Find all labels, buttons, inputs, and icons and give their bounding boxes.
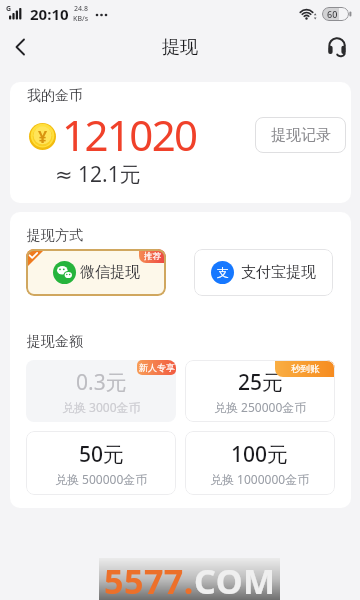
button[interactable]: [0, 28, 40, 66]
button[interactable]: 0.3元: [26, 360, 176, 422]
staticText: ≈ 12.1元: [55, 160, 141, 189]
button[interactable]: 25元: [185, 360, 335, 422]
button[interactable]: 提现记录: [255, 117, 346, 153]
staticText: 提现记录: [271, 126, 331, 145]
staticText: 24.8: [74, 4, 88, 14]
button[interactable]: 微信提现: [26, 249, 166, 296]
staticText: 推荐: [144, 251, 161, 262]
staticText: G: [6, 4, 12, 14]
staticText: 兑换 3000金币: [62, 399, 141, 415]
staticText: 兑换 1000000金币: [210, 471, 310, 487]
staticText: 支付宝提现: [241, 263, 316, 282]
button[interactable]: 50元: [26, 431, 176, 495]
staticText: 我的金币: [27, 87, 83, 105]
staticText: 新人专享: [139, 362, 175, 373]
staticText: 25元: [238, 368, 284, 397]
staticText: 秒到账: [291, 363, 320, 375]
staticText: COM: [194, 558, 276, 600]
staticText: 100元: [231, 440, 289, 469]
staticText: 兑换 250000金币: [214, 399, 307, 415]
button[interactable]: 支: [194, 249, 333, 296]
staticText: 121020: [62, 106, 197, 163]
staticText: 微信提现: [80, 263, 140, 282]
staticText: KB/s: [73, 14, 89, 24]
staticText: 提现方式: [27, 227, 83, 245]
staticText: 兑换 500000金币: [55, 471, 148, 487]
staticText: 5577.: [104, 558, 194, 600]
staticText: 60: [327, 8, 338, 20]
staticText: ¥: [38, 126, 48, 148]
button[interactable]: [314, 28, 360, 66]
staticText: 提现金额: [27, 333, 83, 351]
staticText: 0.3元: [76, 368, 127, 397]
staticText: 50元: [79, 440, 125, 469]
staticText: 提现: [162, 36, 198, 59]
button[interactable]: 100元: [185, 431, 335, 495]
staticText: 20:10: [30, 4, 69, 24]
staticText: 支: [217, 265, 229, 280]
